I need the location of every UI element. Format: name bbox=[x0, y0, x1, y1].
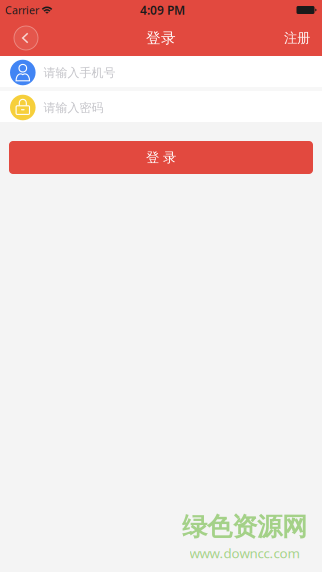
staticText: www.downcc.com bbox=[189, 544, 299, 562]
staticText: 登录 bbox=[146, 29, 176, 47]
staticText: 绿色资源网 bbox=[182, 511, 307, 542]
button[interactable]: 登 录 bbox=[9, 141, 313, 174]
button[interactable]: Back bbox=[8, 20, 44, 56]
staticText: 4:09 PM bbox=[140, 2, 185, 18]
button[interactable]: 请输入密码 bbox=[0, 91, 322, 122]
staticText: Carrier bbox=[5, 3, 39, 17]
staticText: 登 录 bbox=[146, 149, 176, 166]
staticText: 请输入手机号 bbox=[44, 65, 116, 80]
staticText: 请输入密码 bbox=[44, 100, 104, 115]
button[interactable]: 请输入手机号 bbox=[0, 56, 322, 87]
staticText: 注册 bbox=[284, 30, 310, 46]
button[interactable]: 注册 bbox=[284, 20, 322, 56]
